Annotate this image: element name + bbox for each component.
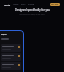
- button[interactable]: [1, 62, 21, 70]
- button[interactable]: mate: [4, 3, 11, 6]
- staticText: Inbox: [1, 33, 7, 36]
- button[interactable]: [1, 53, 21, 61]
- button[interactable]: Get app: [50, 3, 60, 6]
- button[interactable]: Pricing: [28, 3, 35, 6]
- staticText: Get app: [51, 3, 59, 6]
- staticText: Everything you need, in one place: [19, 13, 45, 15]
- button[interactable]: Search: [1, 38, 9, 40]
- button[interactable]: [1, 44, 21, 52]
- button[interactable]: Home: [13, 3, 19, 6]
- button[interactable]: Docs: [21, 3, 26, 6]
- staticText: Designed specifically for you: [15, 8, 50, 11]
